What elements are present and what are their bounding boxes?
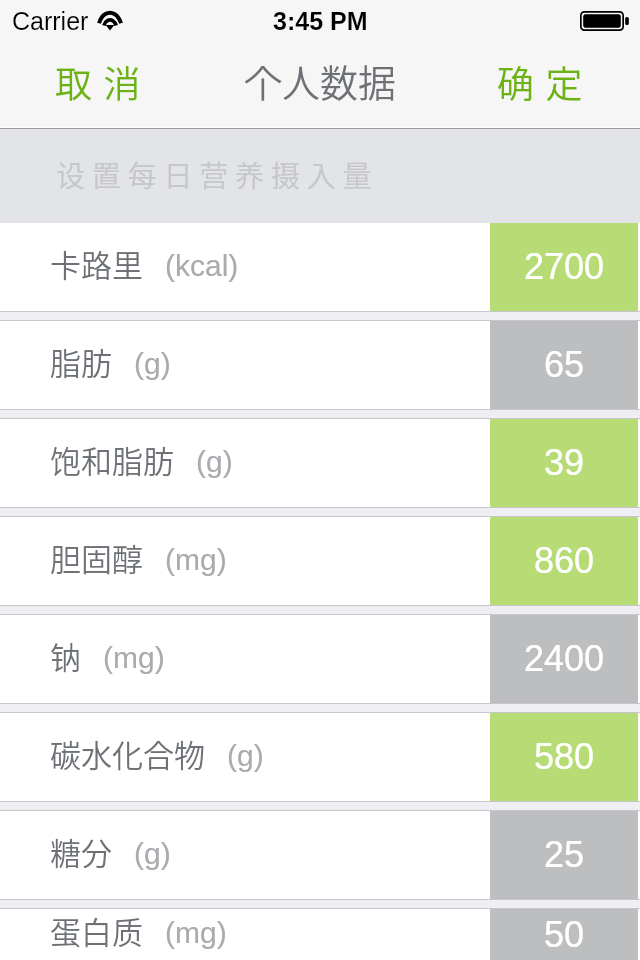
staticText: 设置每日营养摄入量 (56, 153, 379, 195)
button[interactable]: 确 定 (473, 40, 640, 129)
button[interactable]: 碳水化合物 (0, 713, 640, 801)
button[interactable]: 860 (490, 517, 638, 605)
other: Wi-Fi signal (97, 10, 123, 31)
staticText: (g) (134, 347, 171, 381)
staticText: Carrier (12, 7, 89, 35)
button[interactable]: 脂肪 (0, 321, 640, 409)
staticText: 个人数据 (244, 53, 397, 108)
button[interactable]: 2700 (490, 223, 638, 311)
staticText: 确 定 (497, 55, 585, 109)
staticText: 580 (534, 736, 595, 776)
staticText: 50 (544, 914, 585, 954)
staticText: 蛋白质 (50, 908, 143, 953)
staticText: 39 (544, 442, 585, 482)
staticText: (kcal) (165, 249, 239, 283)
other: Battery full (580, 11, 629, 31)
staticText: (mg) (103, 641, 165, 675)
staticText: (mg) (165, 543, 227, 577)
button[interactable]: 25 (490, 811, 638, 899)
staticText: 25 (544, 834, 585, 874)
staticText: (g) (134, 837, 171, 871)
button[interactable]: 饱和脂肪 (0, 419, 640, 507)
button[interactable]: 50 (490, 909, 638, 960)
staticText: 2700 (524, 246, 605, 286)
staticText: 卡路里 (50, 241, 143, 286)
staticText: 糖分 (50, 829, 112, 874)
staticText: 饱和脂肪 (50, 437, 174, 482)
staticText: (mg) (165, 916, 227, 950)
button[interactable]: 39 (490, 419, 638, 507)
staticText: 860 (534, 540, 595, 580)
staticText: 碳水化合物 (50, 731, 205, 776)
button[interactable]: 钠 (0, 615, 640, 703)
button[interactable]: 65 (490, 321, 638, 409)
button[interactable]: 胆固醇 (0, 517, 640, 605)
staticText: 钠 (50, 633, 81, 678)
button[interactable]: 2400 (490, 615, 638, 703)
button[interactable]: 580 (490, 713, 638, 801)
staticText: 取 消 (55, 55, 143, 109)
button[interactable]: 取 消 (0, 40, 167, 129)
staticText: 胆固醇 (50, 535, 143, 580)
staticText: 2400 (524, 638, 605, 678)
button[interactable]: 糖分 (0, 811, 640, 899)
staticText: (g) (196, 445, 233, 479)
button[interactable]: 卡路里 (0, 223, 640, 311)
staticText: 脂肪 (50, 339, 112, 384)
button[interactable]: 蛋白质 (0, 909, 640, 960)
staticText: (g) (227, 739, 264, 773)
staticText: 65 (544, 344, 585, 384)
staticText: 3:45 PM (273, 7, 368, 35)
